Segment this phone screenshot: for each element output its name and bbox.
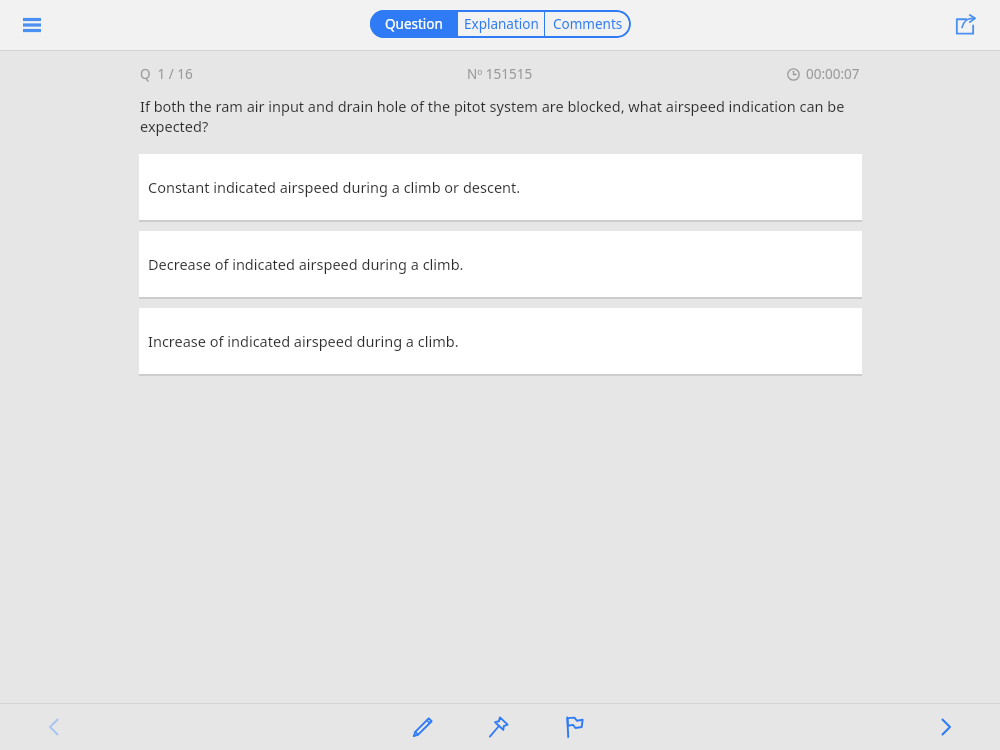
button[interactable]: Share bbox=[946, 6, 984, 44]
staticText: Nº 151515 bbox=[467, 65, 533, 83]
button[interactable]: Explanation bbox=[458, 10, 544, 38]
button[interactable]: Comments bbox=[545, 10, 631, 38]
staticText: Explanation bbox=[464, 15, 539, 33]
staticText: Constant indicated airspeed during a cli… bbox=[148, 177, 521, 197]
button[interactable]: Pin bbox=[478, 707, 518, 747]
staticText: Q 1 / 16 bbox=[140, 65, 193, 83]
staticText: If both the ram air input and drain hole… bbox=[140, 96, 870, 136]
button[interactable]: Flag bbox=[554, 707, 594, 747]
button[interactable]: Menu bbox=[14, 7, 50, 43]
staticText: 00:00:07 bbox=[806, 65, 860, 83]
button[interactable]: Previous question bbox=[33, 706, 75, 748]
staticText: Increase of indicated airspeed during a … bbox=[148, 331, 459, 351]
button[interactable]: Constant indicated airspeed during a cli… bbox=[139, 154, 862, 220]
button[interactable]: Draw bbox=[402, 707, 442, 747]
staticText: Decrease of indicated airspeed during a … bbox=[148, 254, 464, 274]
button[interactable]: Decrease of indicated airspeed during a … bbox=[139, 231, 862, 297]
button[interactable]: Next question bbox=[925, 706, 967, 748]
button[interactable]: Increase of indicated airspeed during a … bbox=[139, 308, 862, 374]
button[interactable]: Question bbox=[370, 10, 457, 38]
staticText: Question bbox=[385, 15, 443, 33]
staticText: Comments bbox=[553, 15, 623, 33]
